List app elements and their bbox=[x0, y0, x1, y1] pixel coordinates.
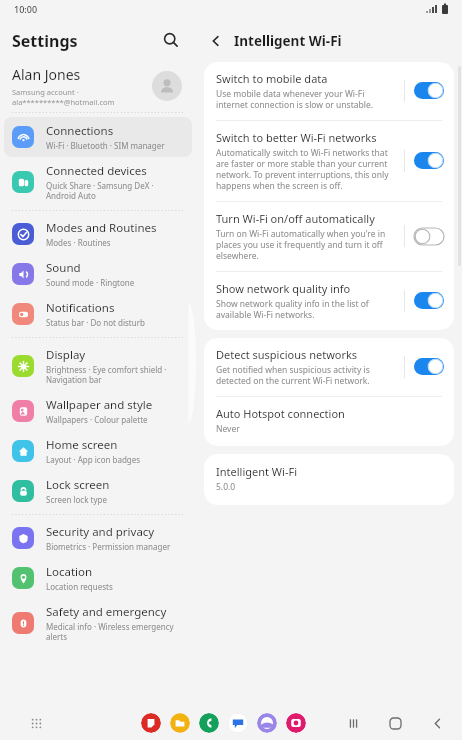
staticText: Screen lock type bbox=[46, 494, 107, 505]
button[interactable]: Apps bbox=[24, 711, 48, 735]
staticText: Medical info · Wireless emergency alerts bbox=[46, 621, 184, 642]
staticText: Modes · Routines bbox=[46, 237, 111, 248]
staticText: Settings bbox=[12, 30, 78, 52]
staticText: Modes and Routines bbox=[46, 220, 157, 236]
staticText: Biometrics · Permission manager bbox=[46, 541, 171, 552]
staticText: Get notified when suspicious activity is… bbox=[216, 364, 396, 386]
button[interactable]: Recents bbox=[342, 712, 364, 734]
staticText: Use mobile data whenever your Wi-Fi inte… bbox=[216, 88, 396, 110]
button[interactable]: Switch to better Wi-Fi networks bbox=[204, 121, 454, 201]
button[interactable]: Location bbox=[4, 558, 192, 598]
button[interactable]: Back bbox=[426, 712, 448, 734]
button[interactable]: On bbox=[414, 152, 444, 169]
staticText: 5.0.0 bbox=[216, 481, 236, 493]
button[interactable]: Home bbox=[384, 712, 406, 734]
staticText: Auto Hotspot connection bbox=[216, 406, 345, 421]
button[interactable]: Show network quality info bbox=[204, 272, 454, 330]
staticText: Connected devices bbox=[46, 163, 147, 179]
button[interactable]: Sound bbox=[4, 254, 192, 294]
button[interactable]: notes bbox=[141, 713, 161, 733]
staticText: Samsung account · bbox=[12, 87, 79, 97]
staticText: Brightness · Eye comfort shield · Naviga… bbox=[46, 364, 184, 385]
button[interactable]: Security and privacy bbox=[4, 518, 192, 558]
button[interactable]: msg bbox=[228, 713, 248, 733]
staticText: Wi-Fi · Bluetooth · SIM manager bbox=[46, 140, 165, 151]
button[interactable]: On bbox=[414, 82, 444, 99]
button[interactable]: Turn Wi-Fi on/off automatically bbox=[204, 202, 454, 271]
staticText: Turn Wi-Fi on/off automatically bbox=[216, 211, 375, 226]
button[interactable]: Wallpaper and style bbox=[4, 391, 192, 431]
staticText: 10:00 bbox=[14, 3, 38, 15]
staticText: Safety and emergency bbox=[46, 604, 167, 620]
button[interactable]: Back bbox=[202, 27, 230, 55]
button[interactable]: Auto Hotspot connection bbox=[204, 397, 454, 446]
staticText: Notifications bbox=[46, 300, 115, 316]
staticText: Automatically switch to Wi-Fi networks t… bbox=[216, 147, 396, 191]
staticText: Intelligent Wi-Fi bbox=[216, 464, 297, 479]
staticText: Switch to mobile data bbox=[216, 71, 328, 86]
button[interactable]: On bbox=[414, 292, 444, 309]
staticText: ala**********@hotmail.com bbox=[12, 97, 115, 107]
staticText: Location bbox=[46, 564, 93, 580]
staticText: Intelligent Wi-Fi bbox=[234, 32, 342, 50]
staticText: Wallpaper and style bbox=[46, 397, 153, 413]
button[interactable]: phone bbox=[199, 713, 219, 733]
staticText: Quick Share · Samsung DeX · Android Auto bbox=[46, 180, 184, 201]
button[interactable]: Detect suspicious networks bbox=[204, 338, 454, 396]
staticText: Show network quality info bbox=[216, 281, 351, 296]
staticText: Status bar · Do not disturb bbox=[46, 317, 145, 328]
staticText: Detect suspicious networks bbox=[216, 347, 358, 362]
staticText: Show network quality info in the list of… bbox=[216, 298, 396, 320]
button[interactable]: Notifications bbox=[4, 294, 192, 334]
staticText: Connections bbox=[46, 123, 114, 139]
button[interactable]: files bbox=[170, 713, 190, 733]
button[interactable]: Switch to mobile data bbox=[204, 62, 454, 120]
staticText: Layout · App icon badges bbox=[46, 454, 141, 465]
button[interactable]: camera bbox=[286, 713, 306, 733]
button[interactable]: Connected devices bbox=[4, 157, 192, 207]
button[interactable]: Connections bbox=[4, 117, 192, 157]
button[interactable]: Alan Jones bbox=[0, 60, 196, 112]
staticText: Sound bbox=[46, 260, 81, 276]
button[interactable]: Off bbox=[414, 228, 444, 245]
staticText: Wallpapers · Colour palette bbox=[46, 414, 148, 425]
button[interactable]: Lock screen bbox=[4, 471, 192, 511]
staticText: Turn on Wi-Fi automatically when you're … bbox=[216, 228, 396, 261]
button[interactable]: On bbox=[414, 358, 444, 375]
button[interactable]: Display bbox=[4, 341, 192, 391]
button[interactable]: Modes and Routines bbox=[4, 214, 192, 254]
staticText: Location requests bbox=[46, 581, 113, 592]
staticText: Display bbox=[46, 347, 86, 363]
button[interactable]: Intelligent Wi-Fi bbox=[204, 454, 454, 505]
button[interactable]: Search bbox=[156, 25, 186, 55]
staticText: Security and privacy bbox=[46, 524, 155, 540]
staticText: Alan Jones bbox=[12, 65, 81, 84]
staticText: Never bbox=[216, 423, 240, 435]
button[interactable]: Safety and emergency bbox=[4, 598, 192, 648]
button[interactable]: internet bbox=[257, 713, 277, 733]
staticText: Home screen bbox=[46, 437, 118, 453]
staticText: Lock screen bbox=[46, 477, 110, 493]
button[interactable]: Home screen bbox=[4, 431, 192, 471]
staticText: Switch to better Wi-Fi networks bbox=[216, 130, 377, 145]
staticText: Sound mode · Ringtone bbox=[46, 277, 135, 288]
